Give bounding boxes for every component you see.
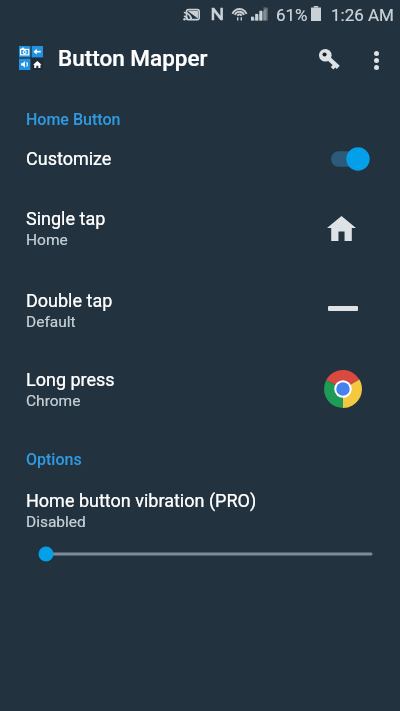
staticText: Home Button [26, 110, 121, 129]
staticText: Default [26, 313, 76, 331]
staticText: Single tap [26, 208, 106, 229]
button[interactable]: Customize [0, 137, 400, 179]
button[interactable]: Single tap [0, 198, 400, 270]
staticText: Customize [26, 148, 112, 169]
button[interactable]: Unlock PRO version [307, 37, 351, 81]
staticText: Double tap [26, 290, 113, 311]
staticText: Button Mapper [58, 45, 208, 71]
staticText: Home button vibration (PRO) [26, 490, 257, 511]
staticText: 61% [276, 5, 308, 25]
staticText: 1:26 AM [331, 5, 394, 25]
button[interactable]: Double tap [0, 280, 400, 352]
button[interactable]: Home button vibration (PRO) [0, 480, 400, 570]
staticText: Chrome [26, 392, 81, 410]
staticText: Options [26, 450, 82, 469]
button[interactable]: Long press [0, 359, 400, 431]
staticText: Long press [26, 369, 115, 390]
button[interactable]: More options [354, 37, 398, 81]
staticText: Home [26, 231, 68, 249]
staticText: Disabled [26, 513, 86, 531]
